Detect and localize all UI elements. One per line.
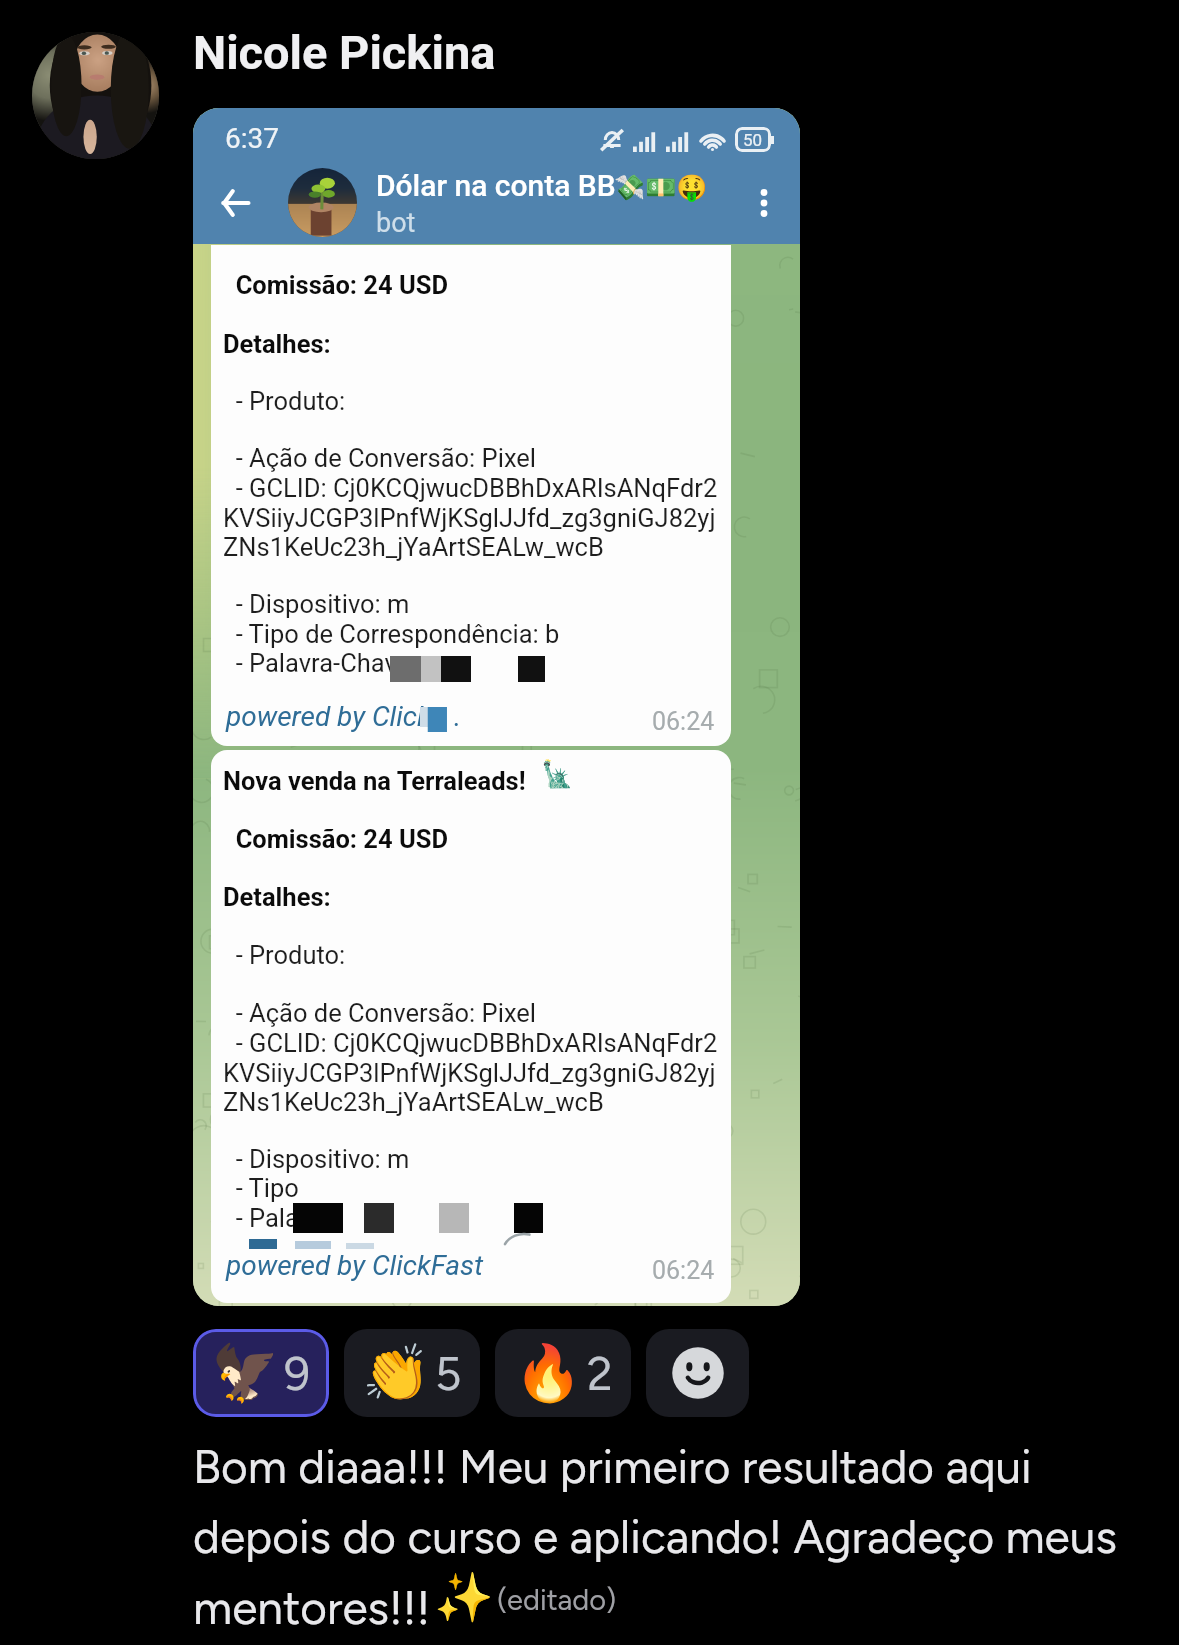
staticText: - Dispositivo: m (223, 589, 410, 619)
staticText: 💸💵🤑 (614, 173, 708, 202)
staticText: 2 (587, 1346, 613, 1401)
button[interactable]: Reaction 2 (495, 1329, 631, 1417)
staticText: powered by ClickFast (226, 1249, 484, 1282)
staticText: ZNs1KeUc23h_jYaArtSEALw_wcB (223, 532, 604, 562)
button[interactable]: Nicole Pickina (193, 25, 496, 80)
staticText: Detalhes: (223, 329, 331, 359)
button[interactable]: More options (743, 178, 785, 228)
staticText: - Pala (223, 1203, 299, 1233)
button[interactable]: Profile picture (32, 32, 159, 159)
staticText: powered by Click (226, 700, 431, 733)
staticText: - Tipo (223, 1173, 299, 1203)
staticText: 🦅 (211, 1341, 273, 1405)
staticText: - Produto: (223, 386, 346, 416)
staticText: bot (376, 207, 416, 239)
button[interactable]: Reaction 9 (193, 1329, 329, 1417)
button[interactable]: Reaction 5 (344, 1329, 480, 1417)
staticText: 🗽 (541, 759, 574, 789)
staticText: 9 (284, 1346, 311, 1401)
staticText: (editado) (497, 1582, 617, 1617)
button[interactable]: Add reaction (646, 1329, 749, 1417)
staticText: KVSiiyJCGP3lPnfWjKSglJJfd_zg3gniGJ82yj (223, 1058, 716, 1088)
staticText: - Palavra-Chave: (223, 648, 417, 678)
staticText: 06:24 (652, 1256, 715, 1285)
staticText: Comissão: 24 USD (223, 270, 449, 300)
staticText: 50 (743, 130, 763, 150)
staticText: - Dispositivo: m (223, 1144, 410, 1174)
staticText: - GCLID: Cj0KCQjwucDBBhDxARIsANqFdr2 (223, 473, 718, 503)
staticText: ZNs1KeUc23h_jYaArtSEALw_wcB (223, 1087, 604, 1117)
staticText: Bom diaaa!!! Meu primeiro resultado aqui… (193, 1439, 1117, 1636)
staticText: - Ação de Conversão: Pixel (223, 443, 537, 473)
staticText: - Tipo de Correspondência: b (223, 619, 560, 649)
staticText: Detalhes: (223, 882, 331, 912)
staticText: - Ação de Conversão: Pixel (223, 998, 537, 1028)
staticText: 06:24 (652, 707, 715, 736)
staticText: 🔥 (514, 1341, 576, 1405)
staticText: - Produto: (223, 940, 346, 970)
button[interactable]: Back (207, 176, 263, 230)
staticText: Comissão: 24 USD (223, 824, 449, 854)
staticText: . (454, 700, 462, 733)
button[interactable]: Shared screenshot (193, 108, 800, 1306)
staticText: Nova venda na Terraleads! (223, 766, 526, 796)
staticText: 👏 (362, 1341, 424, 1405)
staticText: KVSiiyJCGP3lPnfWjKSglJJfd_zg3gniGJ82yj (223, 503, 716, 533)
staticText: ✨ (434, 1569, 494, 1625)
staticText: - GCLID: Cj0KCQjwucDBBhDxARIsANqFdr2 (223, 1028, 718, 1058)
staticText: 6:37 (225, 122, 279, 155)
staticText: Dólar na conta BB (376, 168, 616, 203)
staticText: 5 (435, 1346, 462, 1401)
